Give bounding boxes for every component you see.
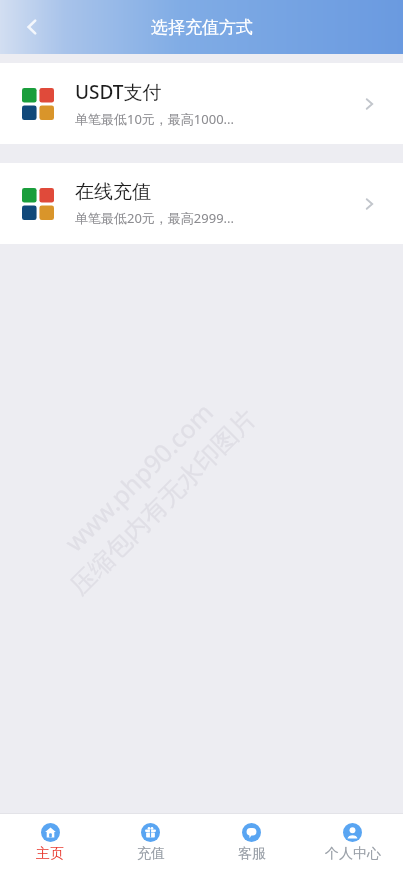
staticText: www.php90.com <box>57 395 220 558</box>
button[interactable]: Back <box>10 5 54 49</box>
staticText: USDT支付 <box>75 79 162 105</box>
staticText: 单笔最低10元，最高1000... <box>75 110 235 128</box>
staticText: 选择充值方式 <box>151 17 253 38</box>
staticText: 主页 <box>36 845 64 863</box>
staticText: 在线充值 <box>75 180 151 204</box>
button[interactable]: 客服 <box>201 817 302 867</box>
button[interactable]: 在线充值 <box>0 163 403 244</box>
staticText: 单笔最低20元，最高2999... <box>75 209 235 227</box>
staticText: 充值 <box>137 845 165 863</box>
button[interactable]: 个人中心 <box>302 817 403 867</box>
button[interactable]: 充值 <box>100 817 201 867</box>
button[interactable]: 主页 <box>0 817 100 867</box>
staticText: 压缩包内有无水印图片 <box>64 403 262 601</box>
staticText: 客服 <box>238 845 266 863</box>
staticText: 个人中心 <box>325 845 381 863</box>
button[interactable]: USDT支付 <box>0 63 403 144</box>
